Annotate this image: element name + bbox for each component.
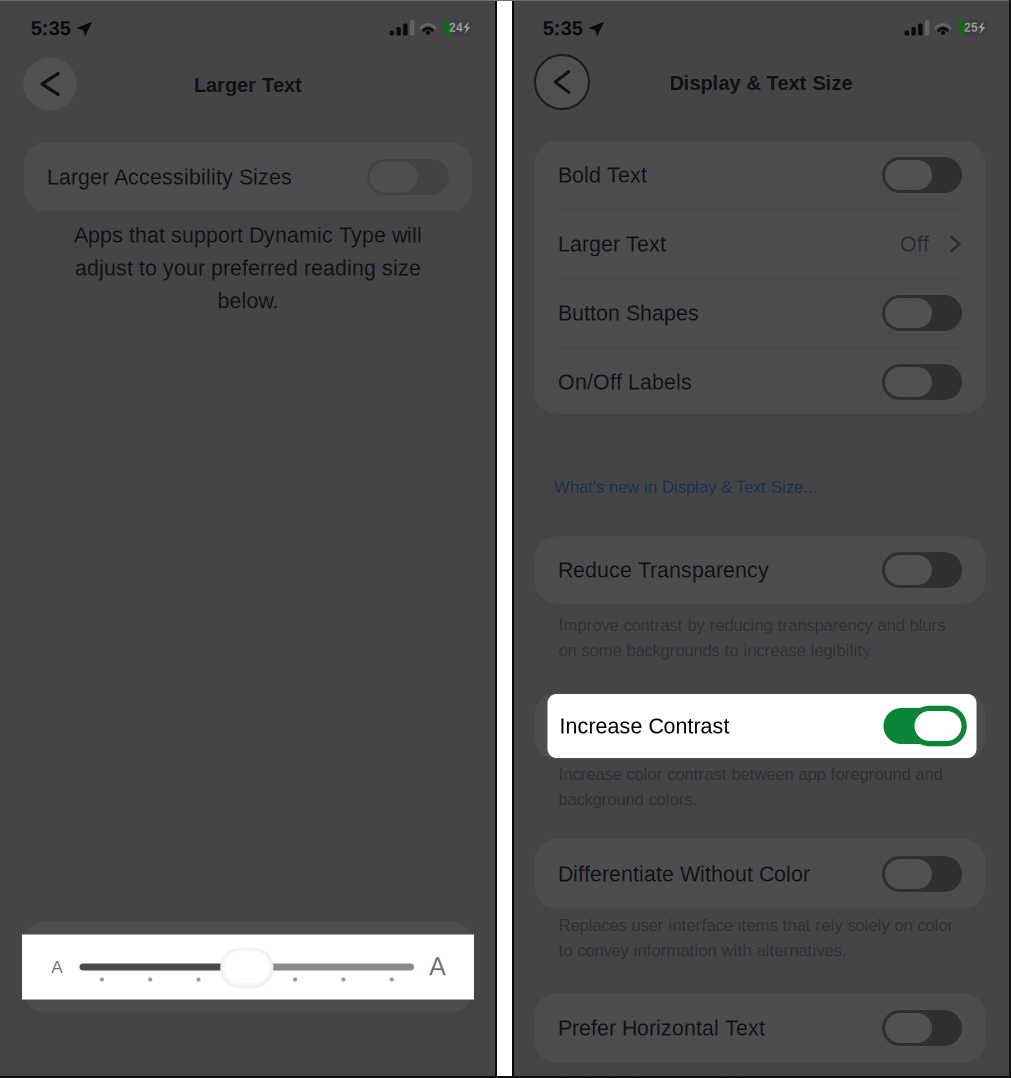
staticText: adjust to your preferred reading size <box>75 256 421 280</box>
button[interactable]: Button Shapes <box>535 279 985 347</box>
staticText: Apps that support Dynamic Type will <box>74 223 422 247</box>
staticText: On/Off Labels <box>558 370 692 394</box>
staticText: Increase Contrast <box>559 714 729 738</box>
staticText: Display & Text Size <box>669 72 852 94</box>
staticText: Prefer horizontal text in languages that… <box>559 1073 905 1078</box>
staticText: Prefer Horizontal Text <box>558 1016 765 1040</box>
staticText: 25 <box>964 21 978 34</box>
button[interactable]: Larger Accessibility Sizes <box>24 143 472 211</box>
staticText: Increase color contrast between app fore… <box>559 765 943 784</box>
staticText: on some backgrounds to increase legibili… <box>559 641 875 660</box>
staticText: A <box>429 952 446 981</box>
staticText: to convey information with alternatives. <box>559 941 847 960</box>
staticText: Larger Accessibility Sizes <box>47 165 292 189</box>
staticText: Bold Text <box>558 163 647 187</box>
button[interactable]: Differentiate Without Color <box>535 840 985 908</box>
staticText: 5:35 <box>31 17 71 39</box>
button[interactable]: Bold Text <box>535 141 985 209</box>
staticText: Larger Text <box>194 74 302 96</box>
button[interactable]: Increase Contrast <box>547 694 976 758</box>
staticText: Improve contrast by reducing transparenc… <box>559 616 946 635</box>
staticText: Larger Text <box>558 232 666 256</box>
staticText: Button Shapes <box>558 301 699 325</box>
staticText: 24 <box>449 21 463 34</box>
staticText: Differentiate Without Color <box>558 862 810 886</box>
button[interactable]: Prefer Horizontal Text <box>535 994 985 1062</box>
button[interactable]: Reduce Transparency <box>535 536 985 604</box>
button[interactable]: On/Off Labels <box>535 348 985 416</box>
staticText: Reduce Transparency <box>558 558 769 582</box>
button[interactable]: A <box>22 934 474 999</box>
button[interactable]: Back <box>535 55 589 109</box>
staticText: 5:35 <box>543 17 583 39</box>
staticText: below. <box>217 289 278 313</box>
staticText: What's new in Display & Text Size... <box>554 478 818 496</box>
button[interactable]: Larger Text <box>535 210 985 278</box>
staticText: background colors. <box>559 790 698 809</box>
button[interactable]: Back <box>23 57 76 110</box>
staticText: Off <box>900 232 929 256</box>
staticText: Replaces user interface items that rely … <box>559 916 954 935</box>
button[interactable]: What's new in Display & Text Size... <box>554 474 834 500</box>
staticText: A <box>51 957 63 977</box>
